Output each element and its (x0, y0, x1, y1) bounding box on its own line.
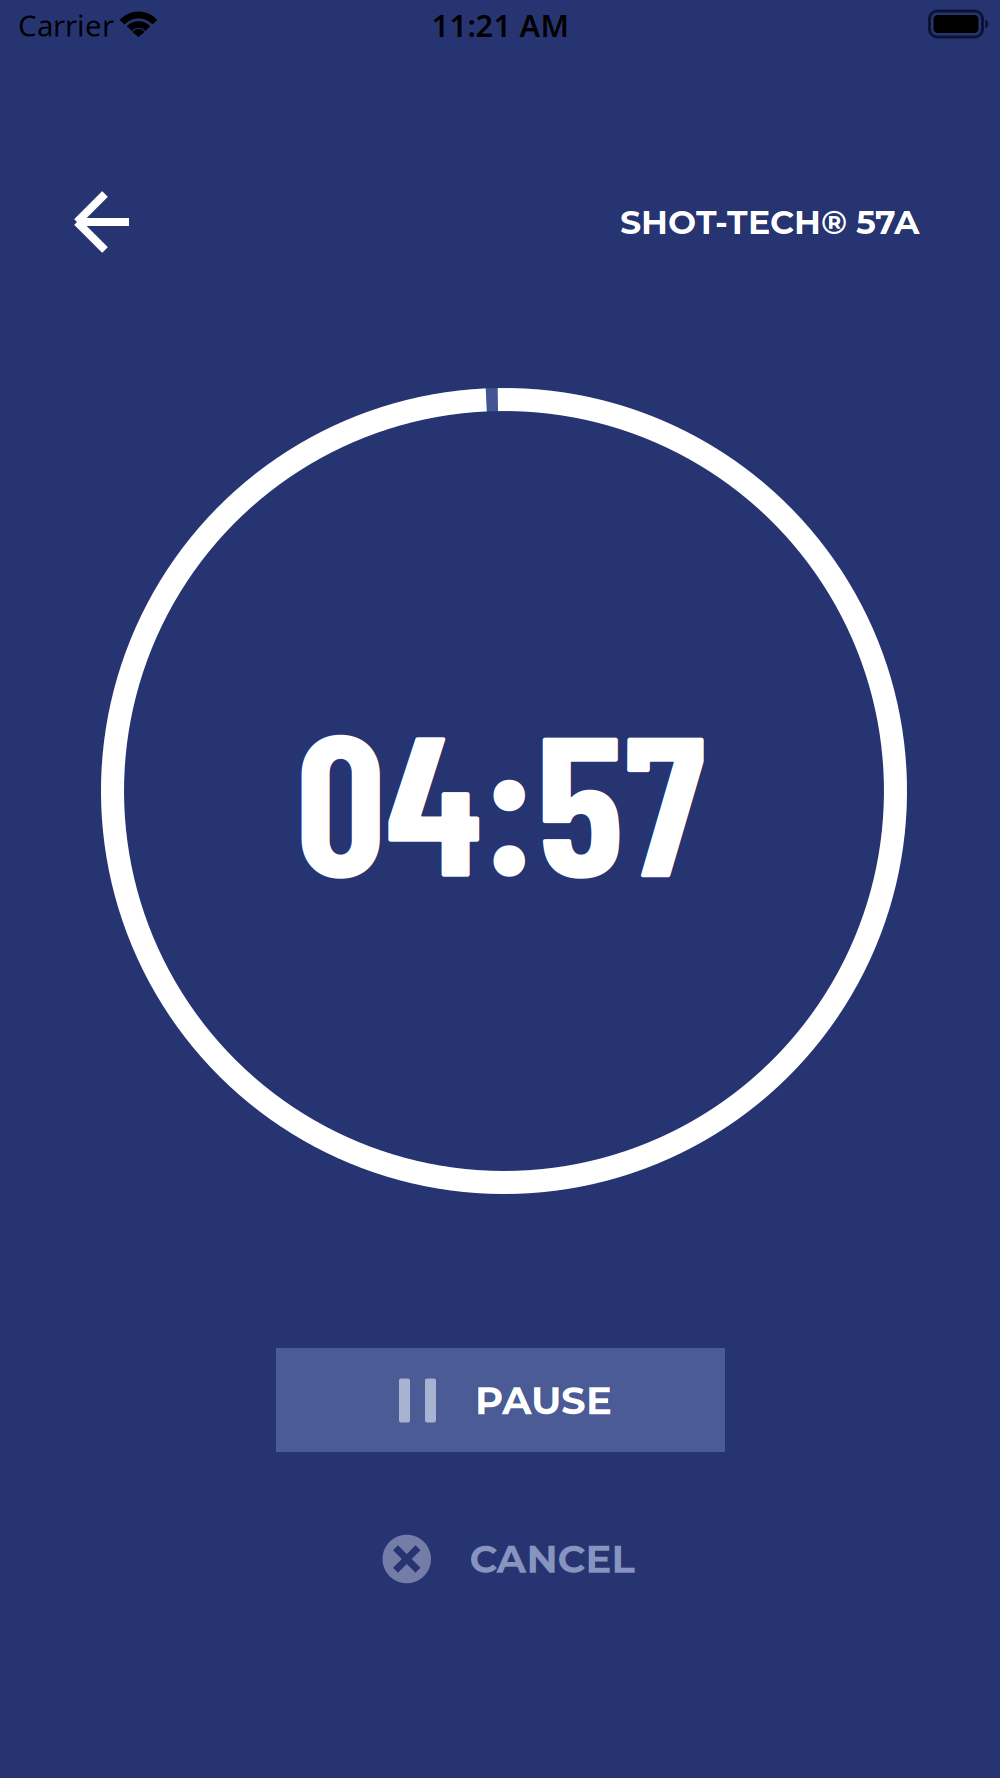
button[interactable]: CANCEL (382, 1535, 634, 1583)
staticText: PAUSE (475, 1377, 612, 1424)
staticText: 11:21 AM (431, 5, 568, 45)
staticText: CANCEL (469, 1535, 634, 1582)
staticText: Carrier (18, 5, 114, 44)
staticText: 04:57 (295, 677, 705, 917)
staticText: SHOT-TECH® 57A (620, 202, 920, 242)
button[interactable]: Back (72, 193, 134, 251)
button[interactable]: PAUSE (276, 1348, 725, 1452)
